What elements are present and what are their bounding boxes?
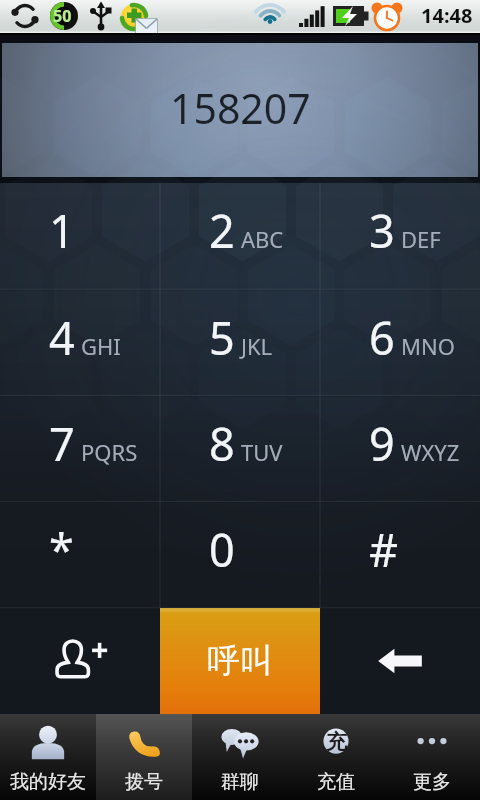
staticText: 拨号: [125, 770, 163, 794]
staticText: 群聊: [221, 770, 259, 794]
staticText: 更多: [413, 770, 451, 794]
staticText: 充值: [317, 770, 355, 794]
staticText: 14:48: [421, 2, 473, 29]
staticText: 充: [326, 729, 347, 755]
button[interactable]: 6: [320, 290, 480, 396]
staticText: 7: [49, 413, 75, 474]
staticText: 8: [209, 413, 235, 474]
button[interactable]: 呼叫: [160, 608, 320, 714]
staticText: DEF: [401, 224, 441, 254]
button[interactable]: 3: [320, 183, 480, 290]
button[interactable]: 5: [160, 290, 320, 396]
button[interactable]: 0: [160, 502, 320, 608]
button[interactable]: 9: [320, 396, 480, 502]
staticText: MNO: [401, 331, 455, 361]
staticText: 我的好友: [10, 770, 86, 794]
staticText: ABC: [241, 224, 284, 254]
button[interactable]: 8: [160, 396, 320, 502]
button[interactable]: Backspace: [320, 608, 480, 714]
staticText: 呼叫: [207, 640, 273, 682]
staticText: #: [369, 519, 399, 580]
staticText: 6: [369, 307, 395, 368]
staticText: 158207: [170, 80, 311, 136]
staticText: WXYZ: [401, 437, 460, 467]
button[interactable]: 7: [0, 396, 160, 502]
button[interactable]: 充: [288, 714, 384, 800]
staticText: 4: [49, 307, 75, 368]
button[interactable]: 群聊: [192, 714, 288, 800]
button[interactable]: 我的好友: [0, 714, 96, 800]
button[interactable]: Add contact: [0, 608, 160, 714]
staticText: *: [49, 519, 74, 580]
button[interactable]: 4: [0, 290, 160, 396]
staticText: PQRS: [81, 437, 138, 467]
button[interactable]: 拨号: [96, 714, 192, 800]
button[interactable]: 1: [0, 183, 160, 290]
button[interactable]: *: [0, 502, 160, 608]
staticText: 50: [53, 5, 72, 27]
button[interactable]: #: [320, 502, 480, 608]
staticText: 2: [209, 200, 235, 261]
staticText: 1: [49, 200, 75, 261]
staticText: 5: [209, 307, 235, 368]
button[interactable]: 2: [160, 183, 320, 290]
button[interactable]: 更多: [384, 714, 480, 800]
staticText: GHI: [81, 331, 121, 361]
staticText: TUV: [241, 437, 283, 467]
staticText: 3: [369, 200, 395, 261]
staticText: JKL: [241, 331, 273, 361]
staticText: 9: [369, 413, 395, 474]
staticText: 0: [209, 519, 235, 580]
